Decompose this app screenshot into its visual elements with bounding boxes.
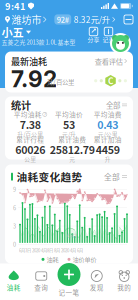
staticText: ?	[44, 112, 46, 117]
staticText: 小五	[1, 25, 23, 38]
button[interactable]: 发现	[83, 268, 110, 291]
staticText: 全部	[106, 101, 120, 109]
staticText: 平均油费	[94, 110, 122, 118]
staticText: 6	[13, 204, 16, 211]
staticText: 我的	[117, 283, 131, 291]
staticText: 油价单价	[72, 256, 96, 263]
staticText: 3	[13, 223, 16, 229]
staticText: 统计	[11, 99, 31, 111]
staticText: 6月3日 2020 4月8日 8月 2020 4月 6月	[19, 248, 83, 253]
staticText: 9	[13, 186, 16, 193]
staticText: 平均油价	[55, 110, 83, 118]
staticText: 升/百公里	[47, 78, 74, 85]
staticText: 9:41	[5, 1, 26, 11]
button[interactable]: 查询	[27, 268, 55, 291]
button[interactable]: 油耗	[0, 268, 27, 291]
staticText: 升	[105, 156, 111, 162]
button[interactable]: 记一笔	[56, 261, 82, 296]
staticText: 公里	[24, 156, 36, 162]
staticText: 潍坊市	[11, 14, 41, 25]
staticText: 0	[13, 241, 16, 248]
staticText: 8.32元/升	[74, 15, 110, 24]
button[interactable]: 92#	[54, 14, 115, 25]
staticText: 发现	[90, 283, 104, 291]
button[interactable]: 小五	[1, 27, 30, 36]
staticText: 累计油费	[58, 135, 86, 143]
button[interactable]: 全部	[106, 101, 127, 109]
staticText: 全部	[104, 172, 120, 181]
staticText: 元/公里	[98, 131, 118, 137]
staticText: 7.92	[11, 68, 57, 90]
staticText: 分享	[87, 36, 99, 43]
staticText: 记一笔	[58, 288, 79, 296]
button[interactable]: Scan code	[124, 15, 133, 24]
staticText: 记录	[102, 36, 114, 43]
staticText: 7.38	[20, 118, 41, 131]
staticText: 五菱之光 2013款 1.0L 基本型	[1, 39, 75, 45]
staticText: 最新油耗	[11, 56, 47, 66]
staticText: 元	[69, 156, 75, 162]
staticText: 60026	[15, 143, 45, 156]
button[interactable]: 查看评估	[95, 57, 127, 65]
staticText: 累计行程	[16, 135, 44, 143]
staticText: 查看评估	[95, 57, 123, 65]
staticText: 4459	[96, 143, 120, 156]
staticText: 0.43	[97, 118, 118, 131]
staticText: 查询	[34, 283, 48, 291]
staticText: 油耗变化趋势	[16, 170, 82, 183]
staticText: 25812.79	[50, 143, 95, 156]
button[interactable]: 记录	[102, 27, 114, 42]
staticText: 升/百公里	[17, 131, 43, 137]
staticText: 累计加油	[94, 135, 122, 143]
staticText: 92#	[57, 15, 69, 24]
staticText: 元/升	[62, 131, 76, 137]
staticText: 6.42	[67, 233, 77, 238]
staticText: 油耗	[46, 256, 58, 263]
button[interactable]: 我的	[110, 268, 138, 291]
button[interactable]: 潍坊市	[5, 14, 46, 25]
button[interactable]: 全部	[104, 172, 127, 181]
staticText: 平均油耗	[14, 110, 42, 118]
staticText: 油耗	[7, 283, 21, 291]
button[interactable]: 分享	[87, 27, 99, 42]
staticText: 53	[63, 118, 75, 131]
staticText: C	[108, 76, 113, 86]
